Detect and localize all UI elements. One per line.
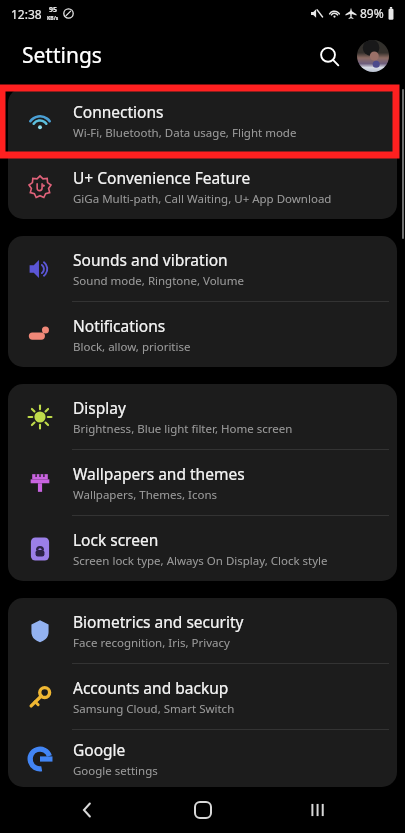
button[interactable]: U+ Convenience Feature [8, 154, 397, 219]
staticText: Display [73, 397, 126, 418]
staticText: 12:38 [11, 6, 42, 22]
button[interactable]: Connections [8, 88, 397, 153]
button[interactable]: Recents [289, 787, 347, 833]
staticText: Brightness, Blue light filter, Home scre… [73, 421, 293, 437]
staticText: Accounts and backup [73, 677, 229, 698]
staticText: Notifications [73, 315, 166, 336]
staticText: Wi-Fi, Bluetooth, Data usage, Flight mod… [73, 125, 297, 141]
staticText: Samsung Cloud, Smart Switch [73, 701, 235, 717]
staticText: Screen lock type, Always On Display, Clo… [73, 553, 328, 569]
staticText: Wallpapers, Themes, Icons [73, 487, 218, 503]
button[interactable]: Google [8, 730, 397, 787]
button[interactable]: Home [174, 787, 232, 833]
staticText: 89% [360, 5, 384, 21]
staticText: KB/s [47, 15, 59, 22]
button[interactable]: Search [309, 36, 349, 76]
button[interactable]: Sounds and vibration [8, 236, 397, 301]
staticText: GiGa Multi-path, Call Waiting, U+ App Do… [73, 191, 332, 207]
button[interactable]: Accounts and backup [8, 664, 397, 729]
staticText: Google [73, 739, 126, 760]
button[interactable]: Display [8, 384, 397, 449]
button[interactable]: Biometrics and security [8, 598, 397, 663]
button[interactable]: Lock screen [8, 516, 397, 581]
staticText: Sound mode, Ringtone, Volume [73, 273, 244, 289]
staticText: Face recognition, Iris, Privacy [73, 635, 230, 651]
staticText: Sounds and vibration [73, 249, 228, 270]
staticText: U+ Convenience Feature [73, 167, 251, 188]
staticText: Block, allow, prioritise [73, 339, 191, 355]
staticText: Wallpapers and themes [73, 463, 245, 484]
staticText: Connections [73, 101, 164, 122]
staticText: Settings [22, 41, 102, 70]
button[interactable]: Notifications [8, 302, 397, 367]
button[interactable]: Account [353, 36, 393, 76]
staticText: Google settings [73, 763, 158, 779]
staticText: 95 [49, 5, 58, 15]
button[interactable]: Wallpapers and themes [8, 450, 397, 515]
button[interactable]: Back [58, 787, 116, 833]
staticText: Lock screen [73, 529, 159, 550]
staticText: Biometrics and security [73, 611, 244, 632]
